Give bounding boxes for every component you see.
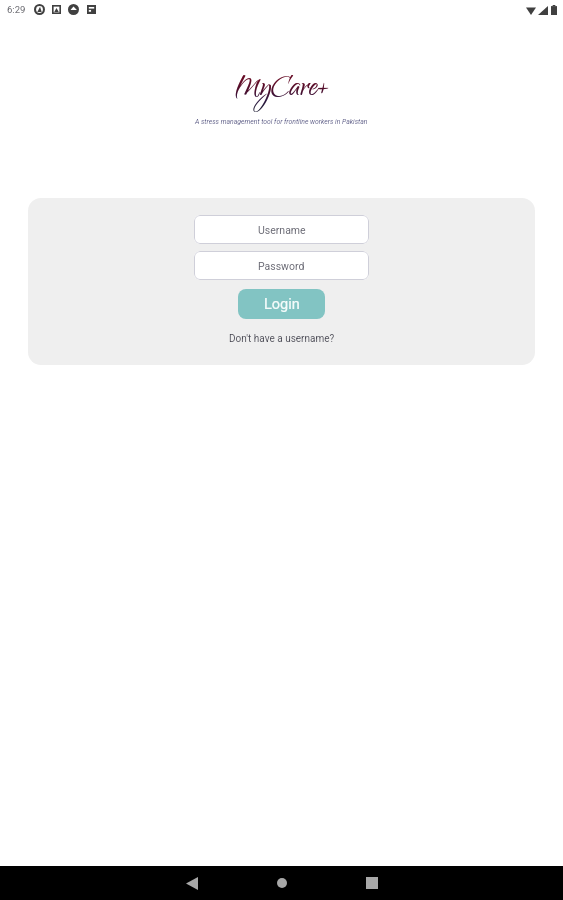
staticText: Don't have a username? [229, 333, 335, 345]
button[interactable]: Recent apps [341, 866, 403, 900]
button[interactable]: Don't have a username? [229, 333, 335, 345]
staticText: Login [264, 296, 300, 313]
staticText: Username [258, 224, 306, 236]
staticText: MyCare+ [235, 68, 329, 113]
button[interactable]: Username [194, 215, 369, 244]
button[interactable]: Password [194, 251, 369, 280]
staticText: Password [258, 260, 305, 272]
button[interactable]: Home [251, 866, 313, 900]
button[interactable]: Login [238, 289, 325, 319]
staticText: 6:29 [7, 4, 26, 15]
staticText: A stress management tool for frontline w… [195, 118, 368, 126]
button[interactable]: Back [161, 866, 223, 900]
